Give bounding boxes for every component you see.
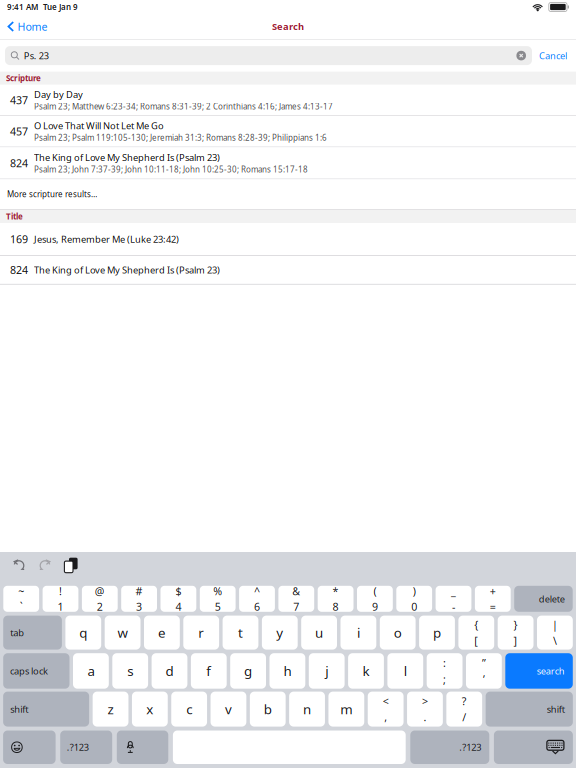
button[interactable]: Redo <box>36 556 54 574</box>
button[interactable]: ~ <box>3 586 39 612</box>
button[interactable]: More scripture results… <box>0 179 576 210</box>
staticText: 437 <box>10 93 28 107</box>
button[interactable]: Space <box>173 730 406 764</box>
button[interactable]: tab <box>3 616 62 650</box>
staticText: Search <box>272 20 304 33</box>
staticText: d <box>165 662 173 680</box>
staticText: | <box>552 617 558 632</box>
staticText: x <box>146 700 153 718</box>
button[interactable]: _ <box>436 586 471 612</box>
button[interactable]: : <box>427 653 462 689</box>
staticText: shift <box>10 703 28 715</box>
button[interactable]: ? <box>446 692 482 727</box>
button[interactable]: & <box>278 586 314 612</box>
button[interactable]: l <box>387 653 423 689</box>
button[interactable]: | <box>537 616 573 650</box>
button[interactable]: @ <box>82 586 118 612</box>
button[interactable]: 457 <box>0 116 576 147</box>
staticText: : <box>443 656 446 670</box>
staticText: The King of Love My Shepherd Is (Psalm 2… <box>34 151 220 164</box>
staticText: + <box>490 584 496 598</box>
button[interactable]: ) <box>396 586 432 612</box>
button[interactable]: Hide keyboard <box>494 730 573 764</box>
button[interactable]: $ <box>160 586 196 612</box>
button[interactable]: h <box>269 653 305 689</box>
button[interactable]: x <box>132 692 168 727</box>
button[interactable]: caps lock <box>3 653 69 689</box>
staticText: More scripture results… <box>7 189 97 199</box>
button[interactable]: e <box>144 616 180 650</box>
button[interactable]: 824 <box>0 256 576 284</box>
button[interactable]: q <box>65 616 101 650</box>
button[interactable]: Cancel <box>532 43 574 68</box>
button[interactable]: Clear text <box>510 46 532 65</box>
button[interactable]: ! <box>43 586 78 612</box>
button[interactable]: % <box>200 586 236 612</box>
staticText: m <box>340 700 352 718</box>
button[interactable]: 437 <box>0 85 576 116</box>
button[interactable]: { <box>458 616 494 650</box>
button[interactable]: a <box>73 653 109 689</box>
button[interactable]: shift <box>3 692 89 727</box>
staticText: ] <box>514 634 518 648</box>
button[interactable]: p <box>419 616 455 650</box>
button[interactable]: m <box>328 692 364 727</box>
button[interactable]: < <box>368 692 404 727</box>
button[interactable]: v <box>210 692 246 727</box>
staticText: 8 <box>333 599 339 614</box>
button[interactable]: u <box>301 616 337 650</box>
button[interactable]: o <box>380 616 416 650</box>
button[interactable]: Emoji <box>3 730 56 764</box>
button[interactable]: search <box>505 653 573 689</box>
staticText: r <box>198 624 204 641</box>
button[interactable]: > <box>407 692 443 727</box>
button[interactable]: } <box>498 616 533 650</box>
button[interactable]: delete <box>514 586 573 612</box>
button[interactable]: i <box>340 616 376 650</box>
staticText: z <box>107 700 113 718</box>
button[interactable]: Home <box>0 14 55 39</box>
button[interactable]: z <box>93 692 128 727</box>
staticText: $ <box>175 584 181 598</box>
button[interactable]: Paste <box>62 556 80 574</box>
button[interactable]: j <box>309 653 345 689</box>
button[interactable]: ” <box>466 653 502 689</box>
staticText: Title <box>6 211 23 222</box>
staticText: b <box>264 700 272 718</box>
button[interactable]: * <box>318 586 353 612</box>
button[interactable]: s <box>112 653 148 689</box>
button[interactable]: g <box>230 653 266 689</box>
button[interactable]: + <box>475 586 511 612</box>
staticText: l <box>404 662 407 680</box>
button[interactable]: r <box>183 616 219 650</box>
button[interactable]: ( <box>357 586 393 612</box>
button[interactable]: t <box>223 616 258 650</box>
staticText: c <box>186 700 192 718</box>
button[interactable]: shift <box>486 692 573 727</box>
staticText: { <box>474 617 478 632</box>
staticText: 9:41 AM <box>7 2 38 12</box>
button[interactable]: 824 <box>0 147 576 179</box>
button[interactable]: k <box>348 653 384 689</box>
staticText: = <box>490 599 496 614</box>
button[interactable]: n <box>289 692 325 727</box>
button[interactable]: Dictate <box>117 730 168 764</box>
button[interactable]: c <box>171 692 207 727</box>
button[interactable]: .?123 <box>60 730 112 764</box>
button[interactable]: f <box>191 653 227 689</box>
button[interactable]: y <box>262 616 298 650</box>
button[interactable]: .?123 <box>410 730 489 764</box>
button[interactable]: b <box>250 692 286 727</box>
staticText: e <box>158 624 166 641</box>
staticText: j <box>325 662 328 680</box>
staticText: w <box>118 624 128 641</box>
button[interactable]: 169 <box>0 223 576 256</box>
button[interactable]: Undo <box>10 556 28 574</box>
button[interactable]: ^ <box>239 586 275 612</box>
staticText: [ <box>474 634 478 648</box>
button[interactable]: # <box>121 586 157 612</box>
button[interactable]: w <box>105 616 140 650</box>
staticText: q <box>79 624 87 641</box>
staticText: \ <box>553 634 557 648</box>
button[interactable]: d <box>152 653 187 689</box>
